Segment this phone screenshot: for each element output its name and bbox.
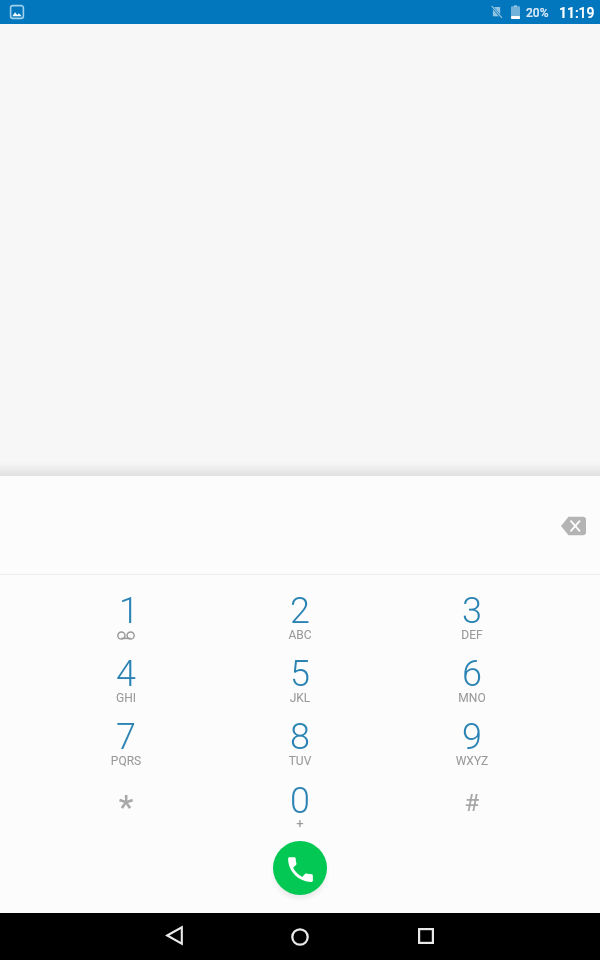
staticText: 6 [412, 653, 532, 695]
staticText: ABC [240, 628, 360, 642]
staticText: 0 [240, 780, 360, 822]
staticText: 8 [240, 716, 360, 758]
staticText: 4 [66, 653, 186, 695]
button[interactable]: Backspace [549, 502, 597, 550]
button[interactable]: 8 [240, 713, 360, 776]
staticText: JKL [240, 691, 360, 705]
staticText: MNO [412, 691, 532, 705]
staticText: # [412, 789, 532, 817]
staticText: 5 [240, 653, 360, 695]
button[interactable]: 5 [240, 650, 360, 713]
button[interactable]: * [66, 777, 186, 840]
staticText: + [240, 816, 360, 831]
button[interactable]: 9 [412, 713, 532, 776]
button[interactable]: 0 [240, 777, 360, 840]
button[interactable]: Call [273, 841, 327, 895]
button[interactable]: 6 [412, 650, 532, 713]
button[interactable]: 7 [66, 713, 186, 776]
staticText: 11:19 [559, 5, 595, 21]
staticText: 2 [240, 590, 360, 632]
staticText: 3 [412, 590, 532, 632]
button[interactable]: 4 [66, 650, 186, 713]
staticText: 7 [66, 716, 186, 758]
button[interactable]: 3 [412, 587, 532, 650]
staticText: DEF [412, 628, 532, 642]
staticText: PQRS [66, 754, 186, 768]
staticText: * [66, 787, 186, 827]
button[interactable]: Recents [402, 912, 450, 959]
button[interactable]: Home [276, 913, 324, 960]
button[interactable]: # [412, 777, 532, 840]
button[interactable]: 1 [66, 587, 186, 650]
staticText: 20% [526, 6, 549, 20]
button[interactable]: Back [150, 912, 198, 959]
staticText: 1 [69, 590, 189, 632]
button[interactable]: 2 [240, 587, 360, 650]
staticText: WXYZ [412, 754, 532, 768]
staticText: GHI [66, 691, 186, 705]
staticText: TUV [240, 754, 360, 768]
staticText: 9 [412, 716, 532, 758]
